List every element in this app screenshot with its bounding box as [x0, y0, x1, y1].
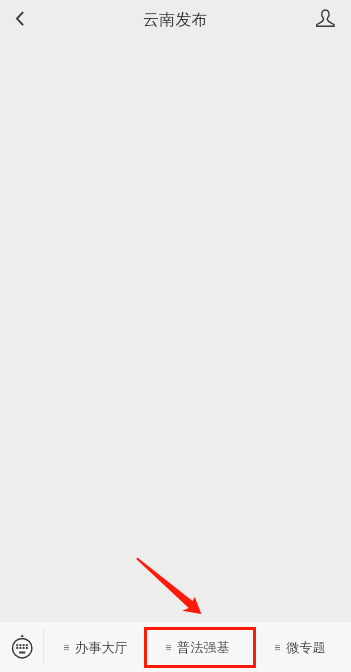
button[interactable]: Contact profile	[307, 0, 351, 38]
button[interactable]: 普法强基	[147, 622, 249, 672]
staticText: 微专题	[286, 639, 326, 656]
button[interactable]: Switch to keyboard	[0, 622, 43, 672]
staticText: 云南发布	[143, 10, 208, 30]
button[interactable]: Back	[0, 0, 40, 38]
staticText: 普法强基	[177, 639, 230, 656]
staticText: 办事大厅	[75, 639, 128, 656]
button[interactable]: 办事大厅	[44, 622, 147, 672]
button[interactable]: 微专题	[249, 622, 351, 672]
